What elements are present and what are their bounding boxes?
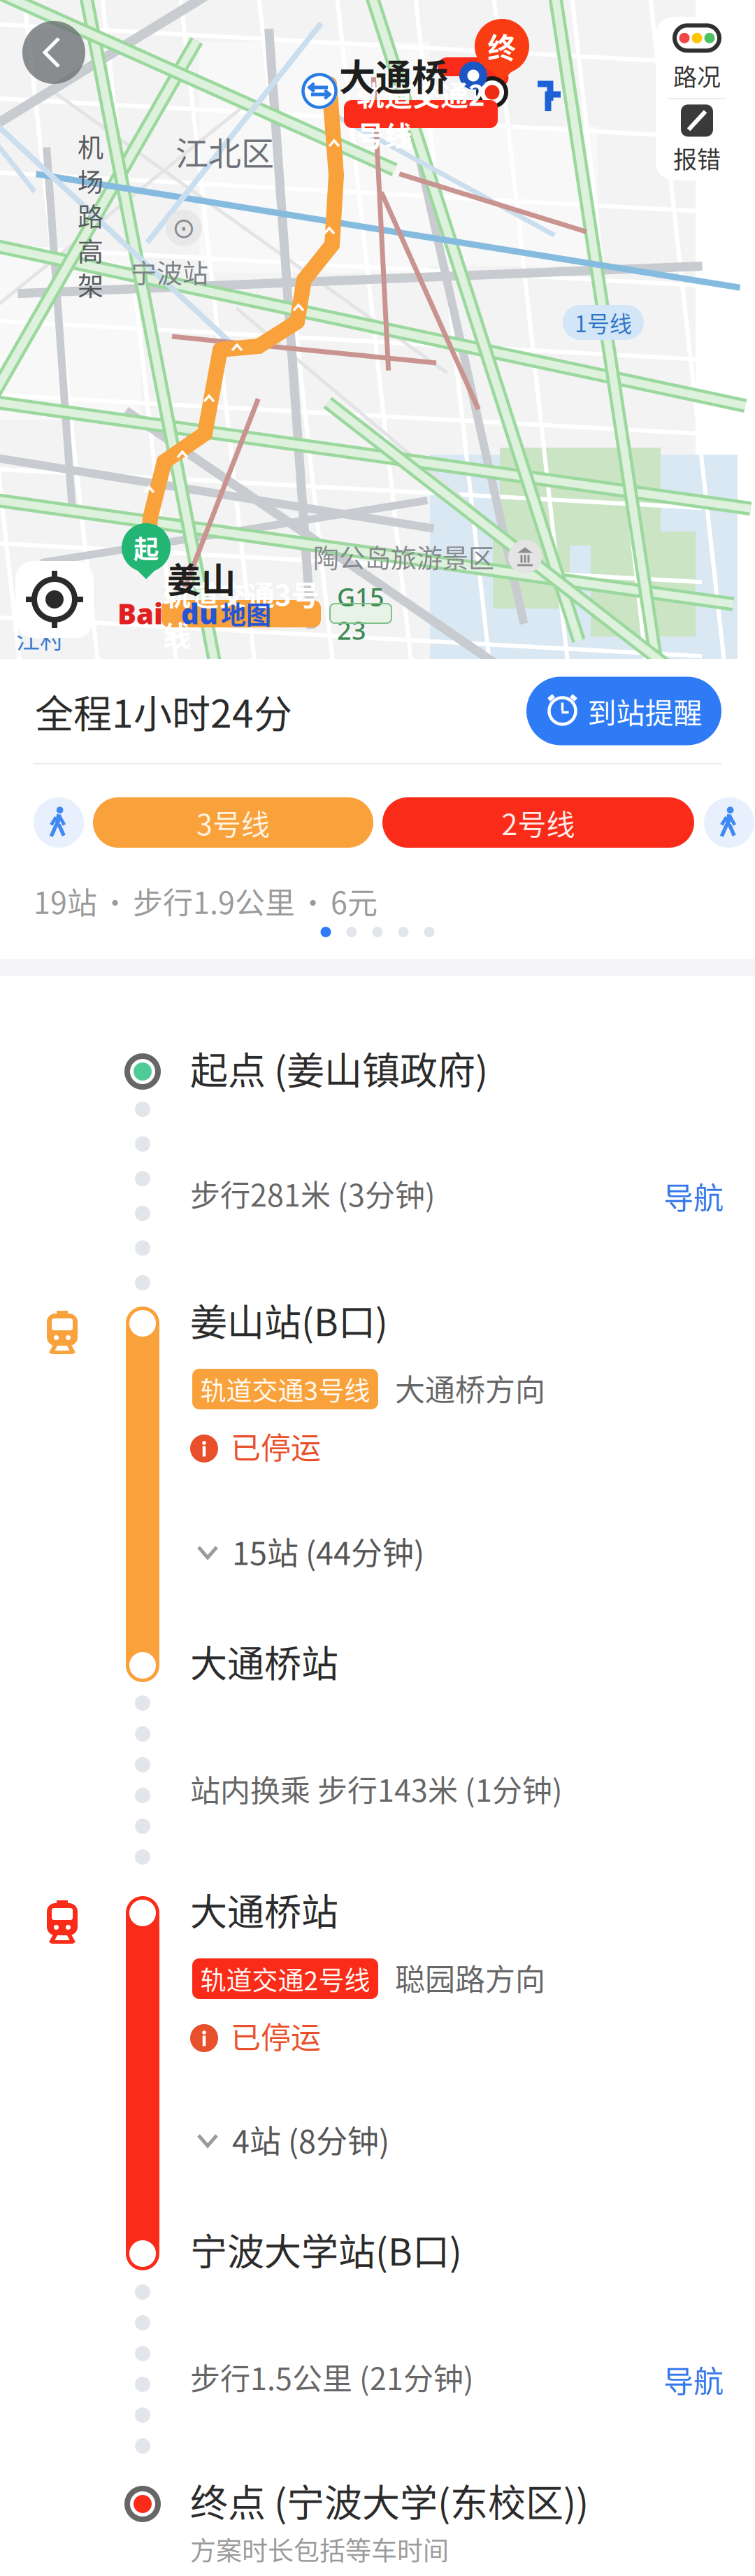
button[interactable]: 导航 — [648, 2354, 739, 2405]
staticText: 起 — [134, 529, 159, 566]
staticText: 19站 — [34, 879, 97, 923]
staticText: 已停运 — [231, 2014, 321, 2057]
staticText: 大通桥方向 — [395, 1366, 545, 1410]
staticText: 导航 — [663, 2358, 724, 2401]
staticText: 姜山 — [167, 553, 236, 603]
staticText: 江北区 — [175, 127, 274, 175]
staticText: 起点 (姜山镇政府) — [190, 1041, 488, 1095]
button[interactable]: Back — [22, 21, 85, 84]
staticText: ⊙ — [172, 212, 196, 244]
button[interactable]: 15站 (44分钟) — [190, 1525, 484, 1581]
staticText: 轨道交通3号线 — [163, 573, 319, 654]
staticText: 大通桥 — [339, 49, 448, 101]
staticText: 机 — [78, 127, 103, 165]
staticText: 场 — [78, 162, 103, 199]
button[interactable]: 报错 — [656, 99, 738, 180]
button[interactable]: 到站提醒 — [526, 677, 721, 745]
staticText: 全程1小时24分 — [35, 683, 292, 739]
staticText: 终 — [488, 26, 516, 67]
staticText: · — [299, 881, 326, 921]
staticText: 1号线 — [575, 306, 632, 339]
staticText: 姜山站(B口) — [190, 1293, 388, 1347]
staticText: 大通桥站 — [190, 1883, 338, 1936]
staticText: 已停运 — [231, 1424, 321, 1468]
staticText: 4站 (8分钟) — [232, 2117, 389, 2162]
staticText: 步行1.5公里 (21分钟) — [190, 2355, 474, 2399]
staticText: 步行1.9公里 — [133, 879, 295, 923]
staticText: 路 — [78, 197, 103, 234]
staticText: · — [101, 881, 129, 921]
button[interactable]: 路况 — [656, 17, 738, 98]
staticText: 轨道交通2号线 — [357, 74, 485, 155]
staticText: 6元 — [331, 879, 377, 923]
button[interactable]: 导航 — [648, 1171, 739, 1221]
staticText: 地图 — [221, 595, 271, 632]
staticText: Bai — [117, 595, 163, 632]
staticText: 轨道交通3号线 — [200, 1370, 370, 1408]
staticText: 导航 — [663, 1174, 724, 1218]
button[interactable]: My location — [15, 561, 94, 638]
button[interactable]: 4站 (8分钟) — [190, 2113, 484, 2169]
staticText: 宁波大学站(B口) — [190, 2223, 462, 2276]
staticText: 终点 (宁波大学(东校区)) — [190, 2473, 589, 2528]
staticText: 路况 — [673, 58, 721, 93]
staticText: 大通桥站 — [190, 1634, 338, 1688]
staticText: 方案时长包括等车时间 — [190, 2530, 449, 2568]
staticText: 陶公岛旅游景区 — [313, 538, 494, 575]
staticText: 江村 — [16, 621, 64, 656]
staticText: 站内换乘 步行143米 (1分钟) — [190, 1767, 563, 1810]
staticText: du — [181, 595, 218, 632]
staticText: 架 — [78, 266, 103, 303]
staticText: 报错 — [673, 141, 721, 175]
staticText: 步行281米 (3分钟) — [190, 1172, 436, 1215]
staticText: 宁波站 — [131, 253, 208, 291]
staticText: 到站提醒 — [588, 690, 702, 732]
staticText: 15站 (44分钟) — [232, 1529, 424, 1574]
staticText: 高 — [78, 231, 103, 269]
staticText: 聪园路方向 — [395, 1956, 545, 1999]
staticText: 2号线 — [502, 802, 575, 843]
staticText: 3号线 — [196, 802, 270, 843]
staticText: 轨道交通2号线 — [200, 1960, 370, 1997]
staticText: G1523 — [337, 580, 384, 647]
